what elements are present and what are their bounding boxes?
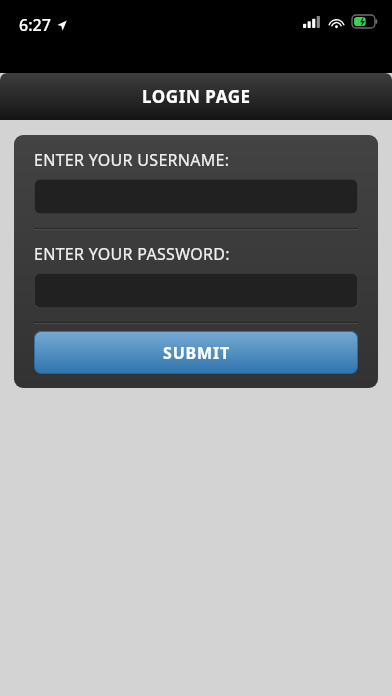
- staticText: 6:27: [19, 14, 51, 36]
- staticText: SUBMIT: [163, 342, 230, 364]
- staticText: ENTER YOUR USERNAME:: [34, 149, 230, 171]
- button[interactable]: [34, 179, 358, 214]
- button[interactable]: [34, 273, 358, 308]
- staticText: ENTER YOUR PASSWORD:: [34, 243, 230, 265]
- staticText: LOGIN PAGE: [142, 85, 251, 108]
- button[interactable]: SUBMIT: [34, 331, 358, 374]
